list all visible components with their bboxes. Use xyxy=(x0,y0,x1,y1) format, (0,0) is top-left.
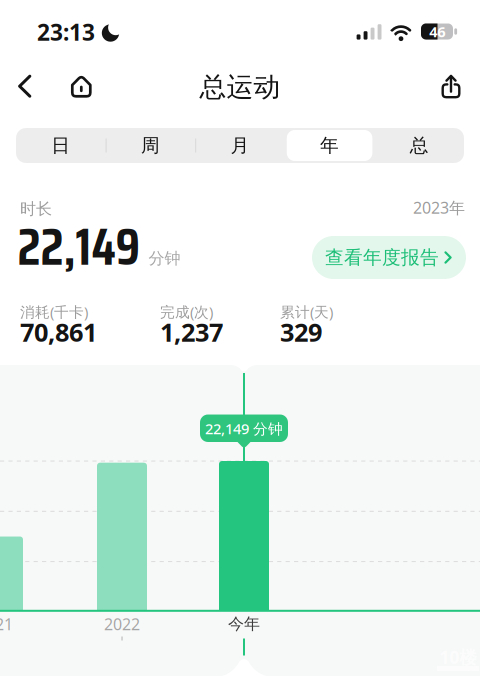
button[interactable]: 周 xyxy=(106,128,195,163)
staticText: 22,149 xyxy=(17,207,140,287)
staticText: 2022 xyxy=(104,613,140,635)
staticText: 完成(次) xyxy=(160,302,213,321)
staticText: 周 xyxy=(141,134,160,157)
staticText: 累计(天) xyxy=(280,302,333,321)
button[interactable]: 总 xyxy=(374,128,464,163)
staticText: 总 xyxy=(410,134,429,157)
staticText: 1,237 xyxy=(160,315,223,349)
staticText: 日 xyxy=(51,134,70,157)
staticText: 年 xyxy=(320,134,339,157)
button[interactable]: Back xyxy=(0,0,44,44)
button[interactable]: 查看年度报告 xyxy=(312,236,466,279)
staticText: 22,149 分钟 xyxy=(205,419,283,438)
staticText: 时长 xyxy=(20,199,52,219)
button[interactable]: 日 xyxy=(16,128,106,163)
button[interactable]: Share xyxy=(0,0,44,44)
staticText: 分钟 xyxy=(148,249,180,268)
staticText: 2023年 xyxy=(413,197,465,218)
staticText: 查看年度报告 xyxy=(325,246,439,269)
staticText: 2021 xyxy=(0,613,13,635)
staticText: 70,861 xyxy=(20,315,97,349)
staticText: 月 xyxy=(230,134,249,157)
staticText: 46 xyxy=(429,22,445,41)
staticText: 23:13 xyxy=(37,17,95,47)
button[interactable]: 年 xyxy=(285,128,374,163)
button[interactable]: Home xyxy=(0,0,44,44)
staticText: 329 xyxy=(280,315,322,349)
staticText: 总运动 xyxy=(199,71,280,103)
button[interactable]: 月 xyxy=(195,128,285,163)
staticText: 今年 xyxy=(228,614,260,634)
staticText: 消耗(千卡) xyxy=(20,302,88,321)
